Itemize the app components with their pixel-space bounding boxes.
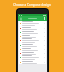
- staticText: Choose a Compose design: [13, 3, 51, 7]
- button[interactable]: [19, 38, 46, 43]
- button[interactable]: [19, 55, 46, 60]
- button[interactable]: [19, 21, 46, 26]
- button[interactable]: [19, 26, 46, 30]
- button[interactable]: Choose a Compose design: [0, 0, 64, 9]
- button[interactable]: [19, 47, 46, 51]
- button[interactable]: [19, 34, 46, 38]
- button[interactable]: [19, 30, 46, 34]
- button[interactable]: [19, 60, 46, 64]
- button[interactable]: [19, 51, 46, 55]
- button[interactable]: Open navigation menu: [19, 17, 22, 20]
- button[interactable]: More options: [43, 17, 46, 20]
- button[interactable]: [19, 43, 46, 47]
